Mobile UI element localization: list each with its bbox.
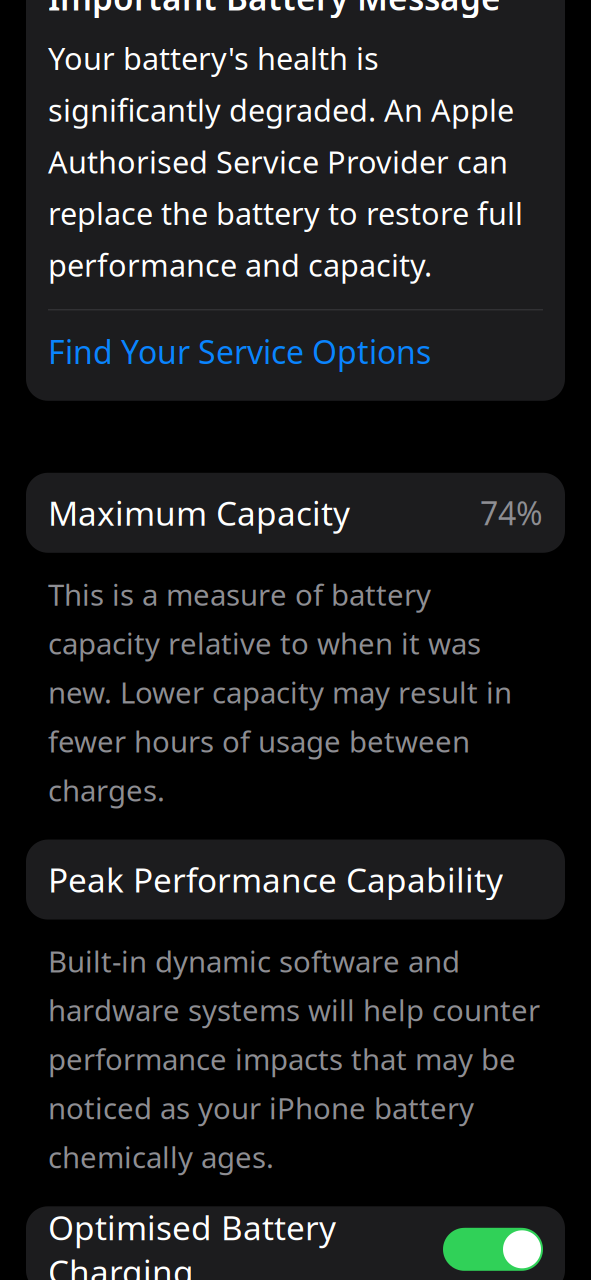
staticText: Peak Performance Capability <box>48 857 503 902</box>
button[interactable]: Optimised Battery Charging <box>26 1206 565 1280</box>
button[interactable]: Peak Performance Capability <box>26 840 565 920</box>
staticText: Your battery's health is significantly d… <box>48 38 523 285</box>
staticText: Find Your Service Options <box>48 330 431 373</box>
staticText: 74% <box>480 491 543 534</box>
staticText: This is a measure of battery capacity re… <box>48 575 512 810</box>
staticText: Important Battery Message <box>48 0 501 20</box>
button[interactable]: Find Your Service Options <box>48 310 543 393</box>
staticText: Built-in dynamic software and hardware s… <box>48 942 540 1176</box>
staticText: Maximum Capacity <box>48 491 350 535</box>
staticText: Optimised Battery Charging <box>48 1205 336 1280</box>
